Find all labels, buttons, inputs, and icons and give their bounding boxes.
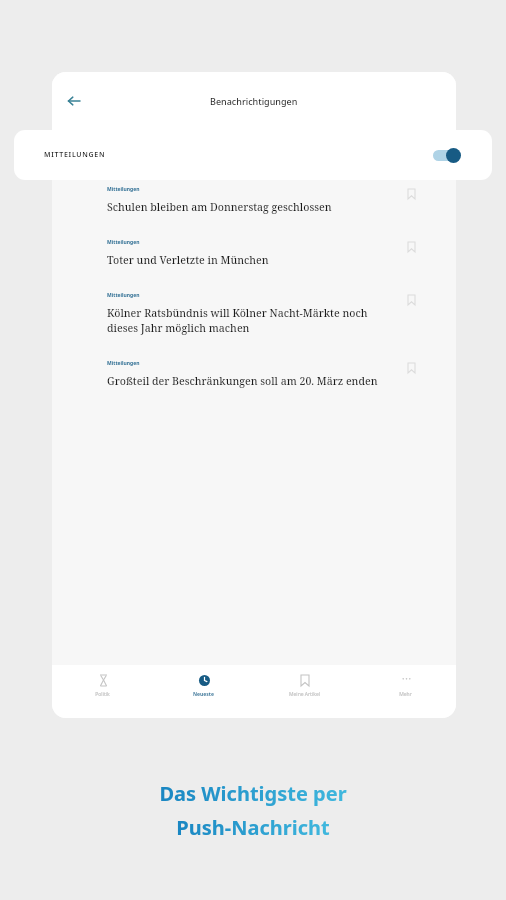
- button[interactable]: Mitteilungen: [107, 292, 418, 335]
- button[interactable]: Merken: [404, 187, 418, 201]
- button[interactable]: Mitteilungen: [107, 186, 418, 214]
- button[interactable]: Back: [58, 85, 90, 117]
- staticText: Kölner Ratsbündnis will Kölner Nacht-Mär…: [107, 306, 388, 335]
- button[interactable]: Merken: [404, 240, 418, 254]
- button[interactable]: MITTEILUNGEN: [14, 130, 492, 180]
- staticText: Mitteilungen: [107, 239, 140, 246]
- staticText: Push-Nachricht: [176, 814, 330, 841]
- button[interactable]: Politik: [52, 674, 153, 718]
- staticText: Benachrichtigungen: [210, 95, 298, 107]
- staticText: Das Wichtigste per: [159, 780, 347, 807]
- staticText: Neueste: [193, 691, 214, 698]
- button[interactable]: Merken: [404, 293, 418, 307]
- staticText: Mitteilungen: [107, 360, 140, 367]
- button[interactable]: Neueste: [153, 674, 254, 718]
- staticText: MITTEILUNGEN: [44, 150, 106, 160]
- button[interactable]: Meine Artikel: [254, 674, 355, 718]
- staticText: Mehr: [399, 691, 412, 698]
- staticText: Mitteilungen: [107, 186, 140, 193]
- staticText: Politik: [95, 691, 110, 698]
- button[interactable]: Merken: [404, 361, 418, 375]
- staticText: Mitteilungen: [107, 292, 140, 299]
- staticText: Meine Artikel: [289, 691, 320, 698]
- button[interactable]: Mitteilungen an: [432, 147, 462, 163]
- button[interactable]: Mitteilungen: [107, 239, 418, 267]
- staticText: Schulen bleiben am Donnerstag geschlosse…: [107, 200, 332, 214]
- button[interactable]: Mitteilungen: [107, 360, 418, 388]
- button[interactable]: Mehr: [355, 674, 456, 718]
- staticText: Toter und Verletzte in München: [107, 253, 269, 267]
- staticText: Großteil der Beschränkungen soll am 20. …: [107, 374, 378, 388]
